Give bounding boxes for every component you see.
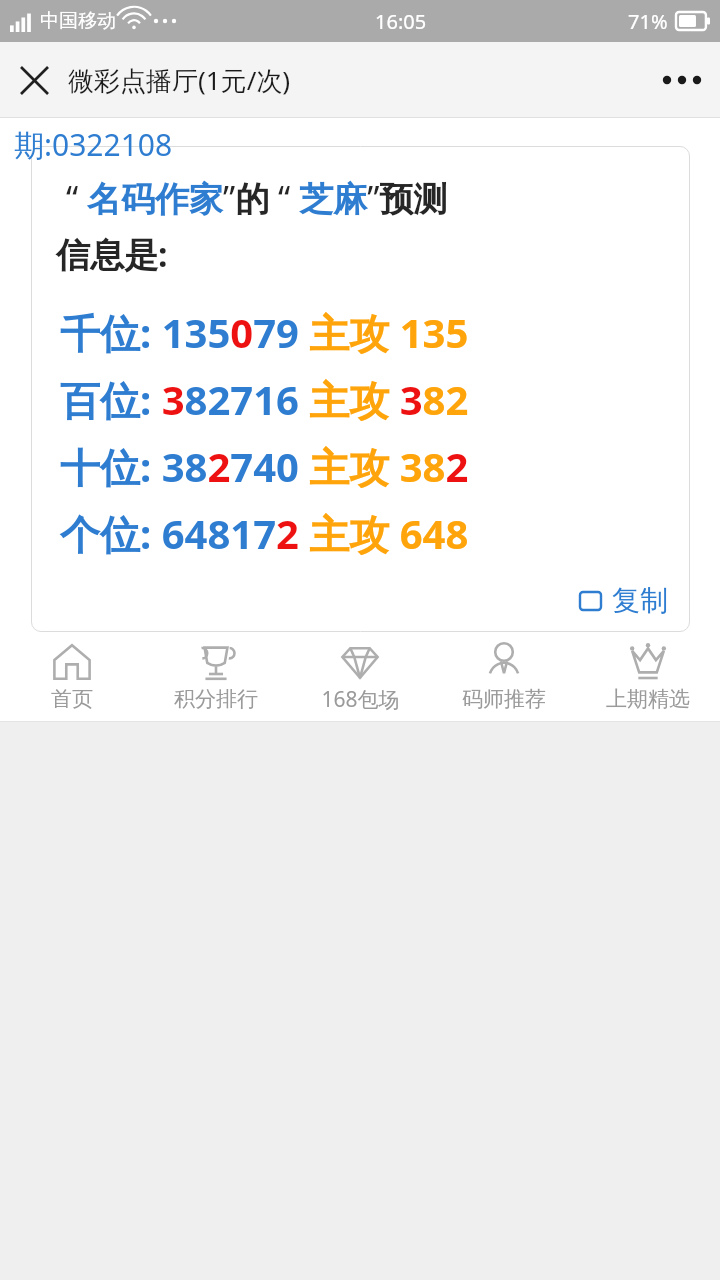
staticText: 168包场: [321, 685, 400, 714]
button[interactable]: More options: [640, 42, 720, 118]
staticText: 信息是:: [56, 231, 168, 277]
staticText: 十位: 382740 主攻 382: [60, 439, 469, 494]
button[interactable]: 首页: [0, 632, 144, 722]
staticText: 个位: 648172 主攻 648: [60, 506, 469, 561]
staticText: 首页: [51, 686, 93, 712]
staticText: 积分排行: [174, 686, 258, 712]
staticText: 微彩点播厅(1元/次): [68, 62, 291, 98]
staticText: 百位: 382716 主攻 382: [60, 372, 469, 427]
button[interactable]: 复制: [580, 583, 668, 618]
button[interactable]: Close: [0, 42, 68, 118]
staticText: 上期精选: [606, 686, 690, 712]
staticText: 复制: [612, 583, 668, 618]
staticText: 中国移动: [40, 9, 116, 33]
staticText: 16:05: [375, 8, 427, 35]
staticText: 期:0322108: [14, 124, 173, 165]
button[interactable]: 168包场: [288, 632, 432, 722]
staticText: “ 名码作家”的 “ 芝麻”预测: [66, 175, 448, 221]
staticText: 码师推荐: [462, 686, 546, 712]
button[interactable]: 上期精选: [576, 632, 720, 722]
staticText: 千位: 135079 主攻 135: [60, 305, 469, 360]
button[interactable]: 积分排行: [144, 632, 288, 722]
staticText: 71%: [628, 8, 668, 35]
button[interactable]: 码师推荐: [432, 632, 576, 722]
